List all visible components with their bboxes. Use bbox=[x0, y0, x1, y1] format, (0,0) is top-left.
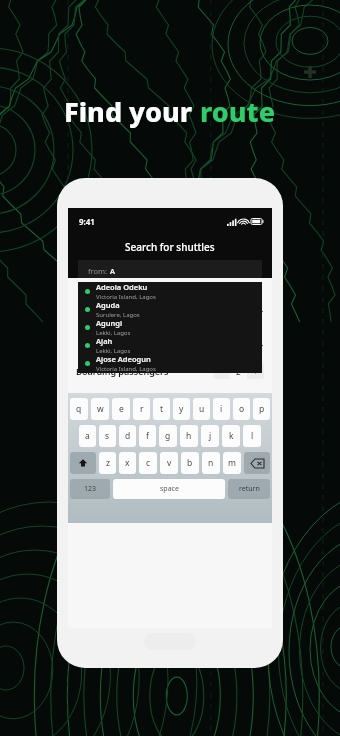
button[interactable]: Shift bbox=[70, 452, 96, 474]
button[interactable]: s bbox=[99, 425, 116, 447]
staticText: Search for shuttles bbox=[125, 240, 215, 254]
staticText: w bbox=[97, 403, 104, 415]
button[interactable]: from: bbox=[78, 260, 262, 282]
staticText: p bbox=[259, 403, 265, 415]
button[interactable]: n bbox=[202, 452, 220, 474]
button[interactable]: Agungi bbox=[78, 318, 262, 336]
staticText: - bbox=[220, 366, 223, 377]
button[interactable]: x bbox=[119, 452, 136, 474]
staticText: v bbox=[167, 457, 172, 469]
button[interactable]: o bbox=[233, 398, 250, 420]
button[interactable]: Ajose Adeogun bbox=[78, 354, 262, 372]
staticText: d bbox=[125, 430, 131, 442]
staticText: return bbox=[239, 484, 260, 494]
staticText: n bbox=[208, 457, 214, 469]
button[interactable]: t bbox=[153, 398, 170, 420]
staticText: e bbox=[119, 403, 124, 415]
staticText: Lekki, Lagos bbox=[96, 347, 131, 354]
staticText: q bbox=[76, 403, 82, 415]
button[interactable]: a bbox=[79, 425, 96, 447]
button[interactable]: 123 bbox=[70, 479, 110, 499]
staticText: Boarding passengers bbox=[76, 365, 169, 377]
button[interactable]: g bbox=[159, 425, 177, 447]
staticText: s bbox=[105, 430, 110, 442]
staticText: Victoria Island, Lagos bbox=[96, 293, 156, 300]
button[interactable]: v bbox=[160, 452, 178, 474]
staticText: l bbox=[251, 430, 254, 442]
staticText: + bbox=[253, 366, 258, 377]
button[interactable]: i bbox=[213, 398, 230, 420]
staticText: c bbox=[146, 457, 151, 469]
button[interactable]: w bbox=[91, 398, 109, 420]
staticText: j bbox=[209, 430, 212, 442]
staticText: Adeola Odeku bbox=[96, 282, 148, 292]
staticText: b bbox=[187, 457, 193, 469]
button[interactable]: Open details bbox=[68, 298, 272, 324]
staticText: route bbox=[200, 93, 276, 130]
button[interactable]: y bbox=[173, 398, 190, 420]
button[interactable]: k bbox=[222, 425, 240, 447]
staticText: Agungi bbox=[96, 318, 123, 328]
staticText: 9:41 bbox=[79, 216, 95, 227]
button[interactable]: Adeola Odeku bbox=[78, 282, 262, 300]
button[interactable]: Open details bbox=[68, 332, 272, 358]
staticText: k bbox=[229, 430, 234, 442]
button[interactable]: q bbox=[70, 398, 88, 420]
staticText: Find your bbox=[64, 93, 200, 130]
staticText: m bbox=[228, 457, 236, 469]
staticText: t bbox=[160, 403, 164, 415]
staticText: Lekki, Lagos bbox=[96, 329, 131, 336]
button[interactable]: space bbox=[113, 479, 225, 499]
button[interactable]: d bbox=[119, 425, 136, 447]
button[interactable]: Decrease passengers bbox=[213, 363, 230, 379]
staticText: Aguda bbox=[96, 300, 120, 310]
button[interactable]: b bbox=[181, 452, 199, 474]
staticText: 2 bbox=[236, 366, 241, 377]
staticText: f bbox=[146, 430, 149, 442]
staticText: g bbox=[165, 430, 171, 442]
button[interactable]: r bbox=[133, 398, 150, 420]
staticText: y bbox=[179, 403, 184, 415]
button[interactable]: j bbox=[201, 425, 219, 447]
staticText: i bbox=[220, 403, 223, 415]
button[interactable]: e bbox=[112, 398, 130, 420]
staticText: A bbox=[110, 266, 115, 276]
button[interactable]: Increase passengers bbox=[247, 363, 264, 379]
staticText: x bbox=[125, 457, 130, 469]
button[interactable]: h bbox=[180, 425, 198, 447]
staticText: a bbox=[85, 430, 90, 442]
button[interactable]: Ajah bbox=[78, 336, 262, 354]
staticText: Ajah bbox=[96, 336, 113, 346]
staticText: Surulere, Lagos bbox=[96, 311, 140, 318]
button[interactable]: p bbox=[253, 398, 270, 420]
button[interactable]: u bbox=[193, 398, 210, 420]
staticText: space bbox=[160, 484, 179, 494]
staticText: o bbox=[239, 403, 245, 415]
staticText: r bbox=[140, 403, 144, 415]
staticText: z bbox=[106, 457, 110, 469]
staticText: from: bbox=[88, 266, 110, 276]
button[interactable]: m bbox=[223, 452, 241, 474]
button[interactable]: z bbox=[99, 452, 116, 474]
button[interactable]: l bbox=[243, 425, 261, 447]
button[interactable]: f bbox=[139, 425, 156, 447]
staticText: 123 bbox=[84, 484, 97, 494]
button[interactable]: c bbox=[139, 452, 157, 474]
staticText: Victoria Island, Lagos bbox=[96, 365, 156, 372]
button[interactable]: Backspace bbox=[244, 452, 270, 474]
button[interactable]: return bbox=[228, 479, 270, 499]
staticText: u bbox=[199, 403, 205, 415]
staticText: h bbox=[186, 430, 192, 442]
button[interactable]: Aguda bbox=[78, 300, 262, 318]
staticText: Ajose Adeogun bbox=[96, 354, 151, 364]
